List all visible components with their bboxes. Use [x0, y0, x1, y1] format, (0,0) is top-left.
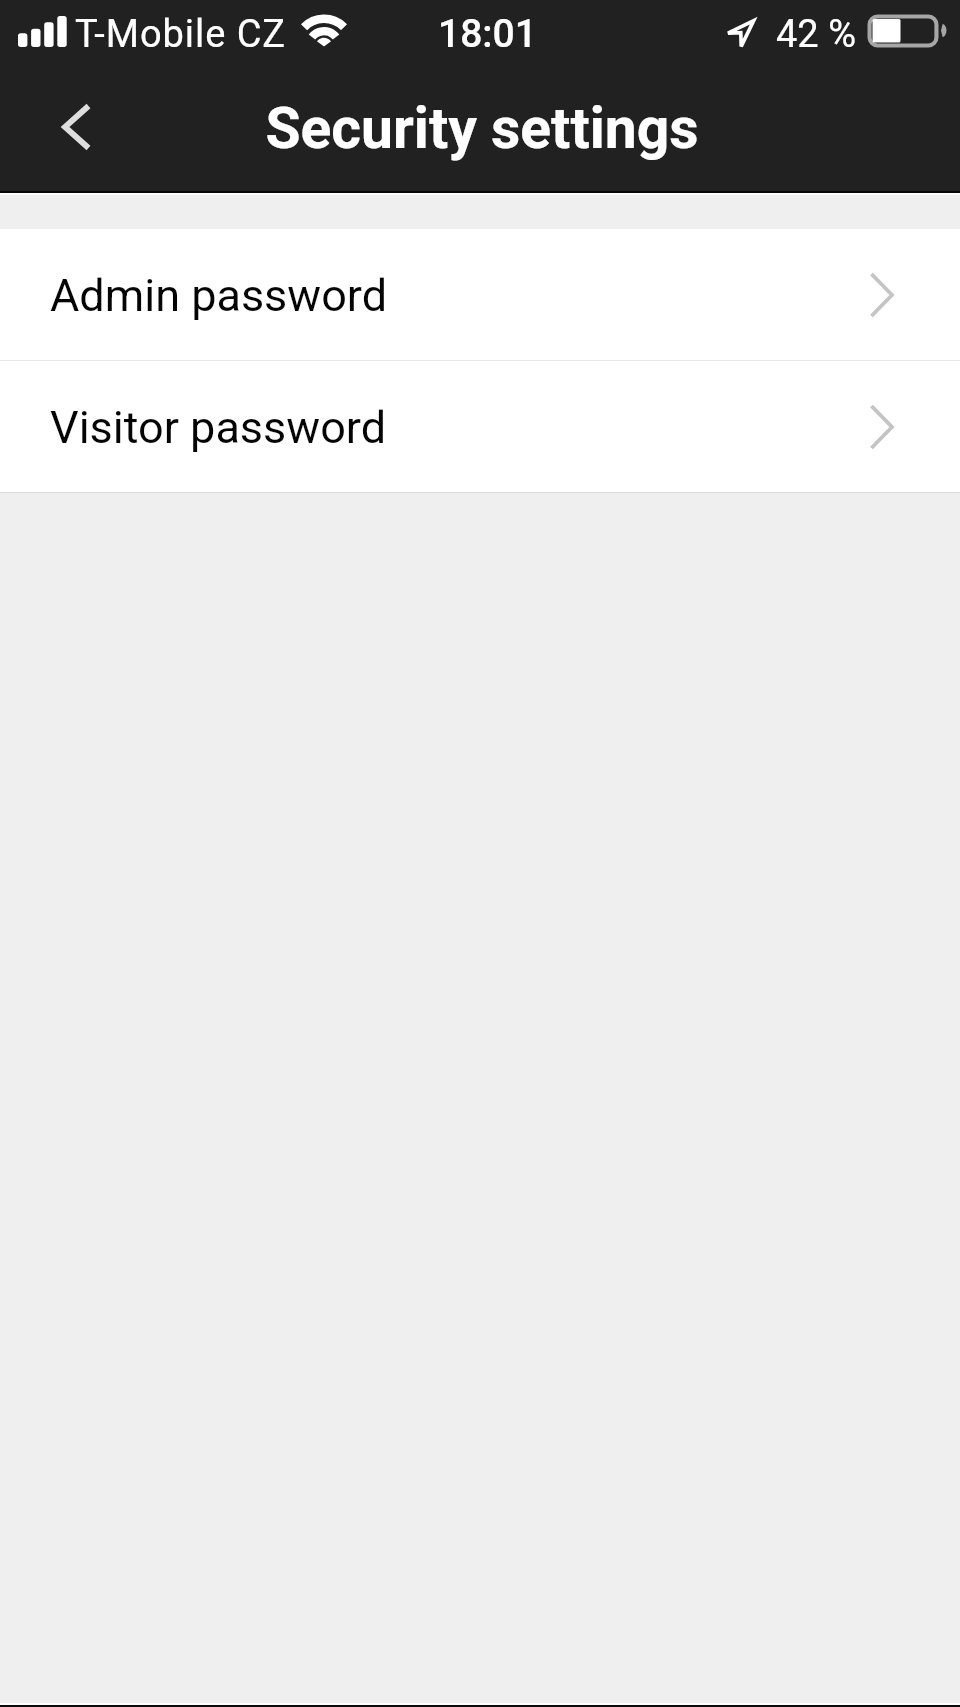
- staticText: Admin password: [50, 269, 388, 322]
- staticText: T-Mobile CZ: [75, 12, 287, 57]
- staticText: Visitor password: [50, 401, 387, 454]
- button[interactable]: Visitor password: [0, 361, 960, 492]
- staticText: 18:01: [438, 11, 537, 57]
- button[interactable]: Back: [23, 72, 133, 182]
- staticText: 42 %: [776, 12, 856, 57]
- staticText: Security settings: [265, 95, 699, 162]
- button[interactable]: Admin password: [0, 229, 960, 360]
